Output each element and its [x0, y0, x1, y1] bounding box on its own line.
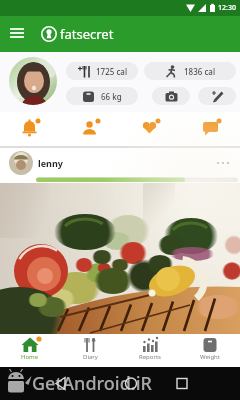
staticText: fatsecret [60, 25, 114, 43]
button[interactable] [9, 57, 57, 105]
button[interactable] [76, 114, 104, 142]
button[interactable]: Reports [120, 334, 180, 367]
button[interactable] [197, 114, 225, 142]
staticText: Home [21, 353, 39, 361]
button[interactable]: Weight [180, 334, 240, 367]
staticText: Reports [139, 353, 161, 361]
button[interactable]: Diary [60, 334, 120, 367]
staticText: lenny [38, 157, 63, 169]
staticText: Weight [200, 353, 220, 361]
button[interactable] [0, 16, 34, 50]
staticText: 1836 cal [184, 66, 216, 77]
staticText: GetAndroid.iR [32, 371, 152, 396]
button[interactable]: lenny [0, 148, 240, 177]
staticText: 1725 cal [96, 66, 128, 77]
button[interactable]: 1725 cal [66, 62, 138, 80]
button[interactable] [152, 87, 190, 105]
staticText: Diary [83, 353, 98, 361]
button[interactable] [136, 114, 164, 142]
button[interactable] [0, 183, 240, 334]
button[interactable] [198, 87, 236, 105]
button[interactable]: Home [0, 334, 60, 367]
button[interactable]: 1836 cal [144, 62, 236, 80]
button[interactable]: 66 kg [66, 87, 138, 105]
staticText: 66 kg [101, 91, 122, 102]
button[interactable] [16, 114, 44, 142]
staticText: 12:30 [218, 3, 236, 13]
